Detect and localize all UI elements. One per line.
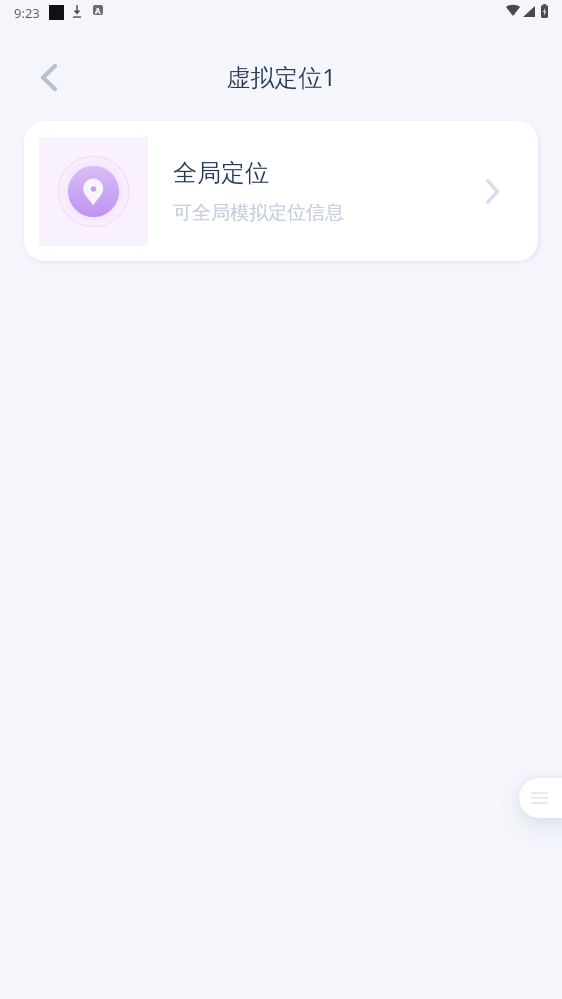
staticText: 虚拟定位1 — [226, 60, 336, 93]
staticText: 9:23 — [14, 4, 40, 22]
staticText: A — [95, 5, 101, 15]
staticText: 可全局模拟定位信息 — [173, 201, 344, 225]
button[interactable]: Menu — [519, 778, 562, 818]
staticText: 全局定位 — [173, 158, 269, 188]
button[interactable]: 全局定位 — [24, 121, 538, 261]
button[interactable]: Back — [27, 55, 71, 99]
